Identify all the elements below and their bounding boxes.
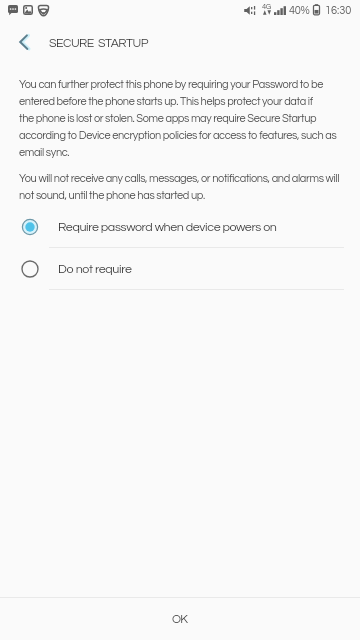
staticText: not sound, until the phone has started u… xyxy=(19,190,205,201)
staticText: 16:30 xyxy=(325,5,352,16)
staticText: Do not require xyxy=(58,263,132,276)
staticText: according to Device encryption policies … xyxy=(19,130,337,141)
staticText: the phone is lost or stolen. Some apps m… xyxy=(19,113,317,124)
button[interactable]: OK xyxy=(0,598,360,640)
staticText: OK xyxy=(172,613,188,625)
staticText: Require password when device powers on xyxy=(58,221,277,234)
staticText: You will not receive any calls, messages… xyxy=(19,173,340,184)
staticText: SECURE STARTUP xyxy=(49,37,148,50)
staticText: 4G xyxy=(262,3,271,11)
button[interactable]: Do not require xyxy=(0,248,360,290)
staticText: You can further protect this phone by re… xyxy=(19,79,324,90)
staticText: entered before the phone starts up. This… xyxy=(19,96,313,107)
button[interactable]: Require password when device powers on xyxy=(0,206,360,248)
button[interactable]: Navigate up xyxy=(0,24,42,60)
staticText: email sync. xyxy=(19,147,70,158)
staticText: 40% xyxy=(289,5,310,16)
